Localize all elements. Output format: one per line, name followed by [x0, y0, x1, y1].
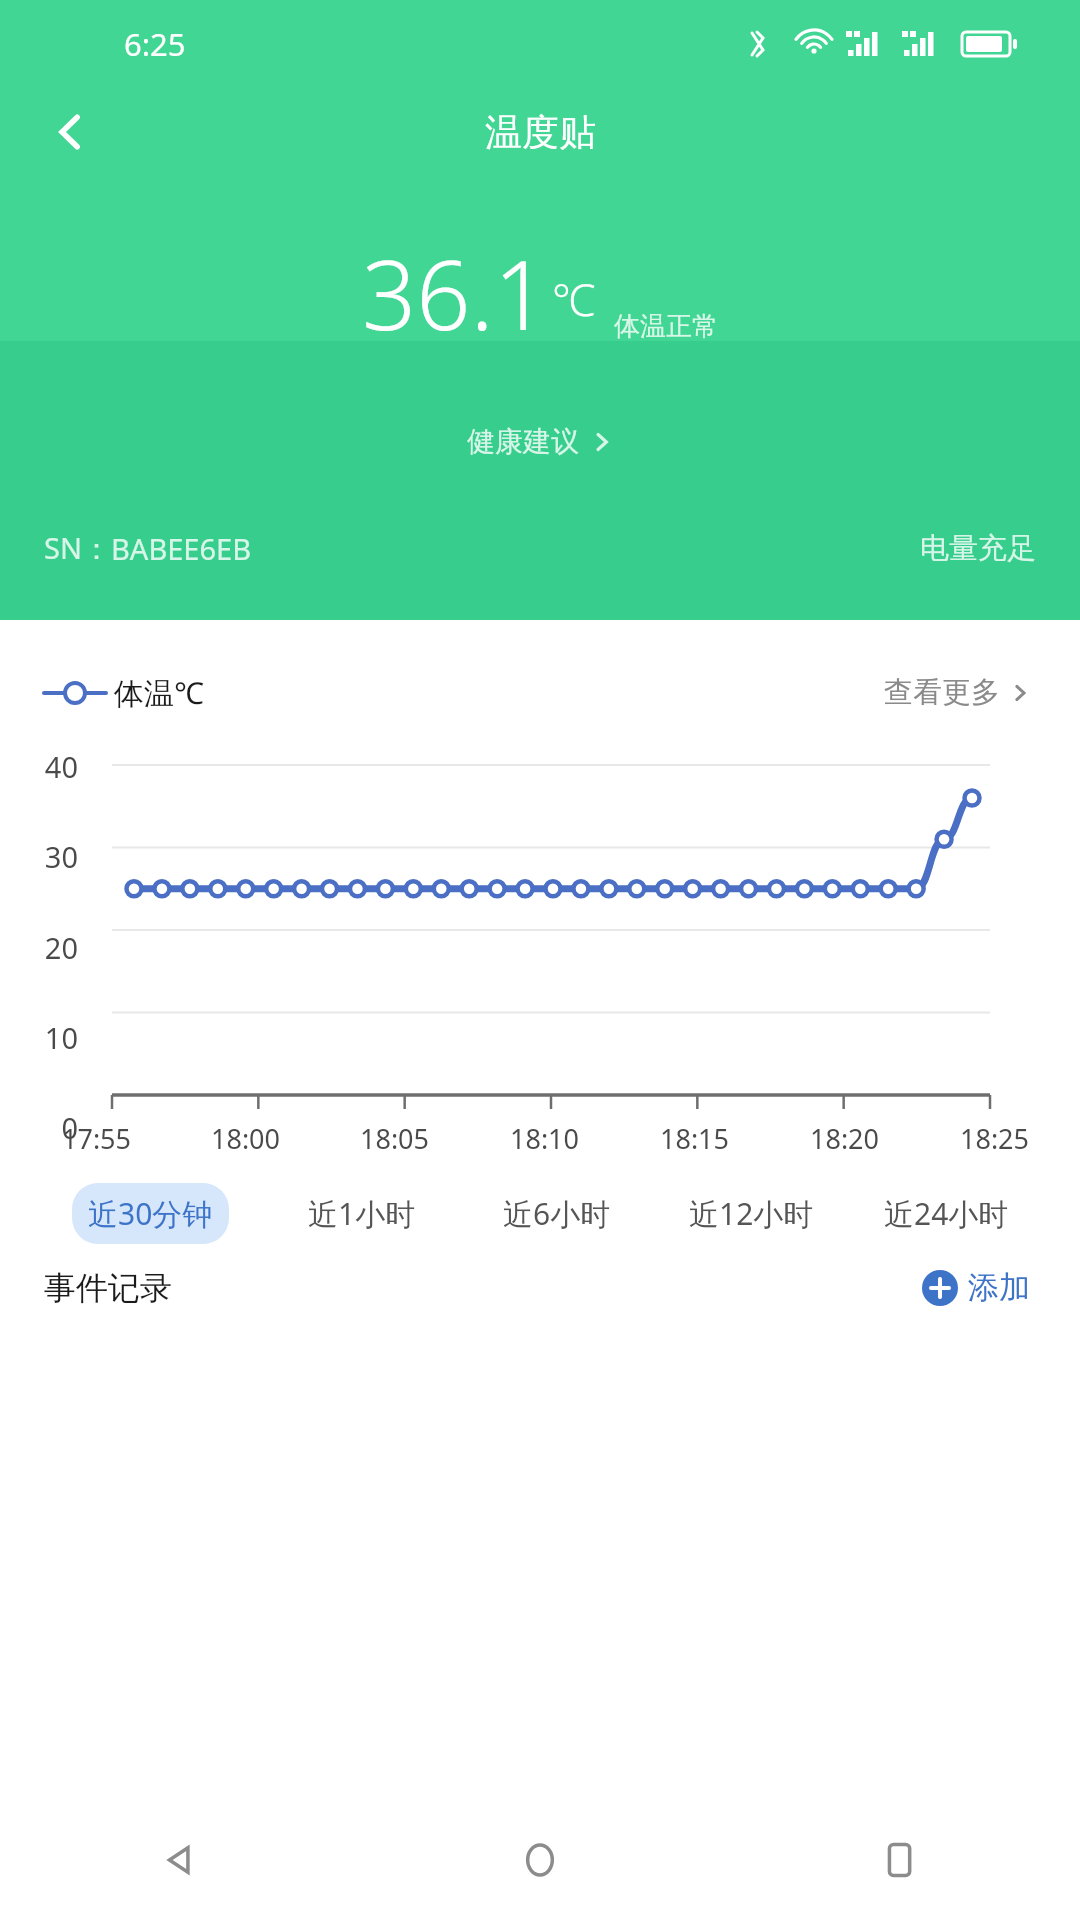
button[interactable]: 体温℃ — [44, 672, 204, 713]
button[interactable]: Back — [0, 1800, 360, 1920]
staticText: 18:10 — [510, 1120, 580, 1157]
button[interactable]: 查看更多 — [878, 668, 1036, 717]
staticText: 近24小时 — [884, 1193, 1009, 1234]
staticText: 温度贴 — [485, 109, 596, 156]
staticText: 18:25 — [960, 1120, 1030, 1157]
staticText: SN： — [44, 528, 111, 568]
staticText: 18:20 — [810, 1120, 880, 1157]
staticText: 0 — [61, 1108, 78, 1147]
staticText: 36.1 — [362, 228, 548, 357]
staticText: 40 — [44, 747, 78, 786]
button[interactable]: 近6小时 — [487, 1183, 627, 1244]
staticText: 18:05 — [360, 1120, 430, 1157]
staticText: 添加 — [968, 1268, 1030, 1307]
button[interactable]: Back — [30, 92, 110, 172]
staticText: ℃ — [552, 269, 596, 329]
staticText: 6:25 — [124, 23, 186, 65]
staticText: 近1小时 — [308, 1193, 416, 1234]
staticText: 体温正常 — [614, 310, 718, 343]
staticText: 10 — [44, 1018, 78, 1057]
staticText: 20 — [44, 928, 78, 967]
staticText: BABEE6EB — [111, 529, 252, 568]
button[interactable]: 近1小时 — [292, 1183, 432, 1244]
staticText: 30 — [44, 837, 78, 876]
button[interactable]: Recents — [720, 1800, 1080, 1920]
staticText: 电量充足 — [920, 530, 1036, 567]
staticText: 18:00 — [211, 1120, 281, 1157]
button[interactable]: Home — [360, 1800, 720, 1920]
button[interactable]: 添加 — [916, 1262, 1036, 1313]
staticText: 近6小时 — [503, 1193, 611, 1234]
staticText: 17:55 — [62, 1120, 132, 1157]
button[interactable]: 近24小时 — [868, 1183, 1025, 1244]
staticText: 查看更多 — [884, 674, 1000, 711]
staticText: 18:15 — [660, 1120, 730, 1157]
staticText: 近12小时 — [689, 1193, 814, 1234]
button[interactable]: 近12小时 — [673, 1183, 830, 1244]
staticText: 体温℃ — [114, 672, 204, 713]
button[interactable]: 健康建议 — [457, 418, 623, 465]
staticText: 近30分钟 — [88, 1193, 213, 1234]
button[interactable]: 近30分钟 — [72, 1183, 229, 1244]
staticText: 健康建议 — [467, 424, 579, 459]
staticText: 事件记录 — [44, 1268, 172, 1308]
